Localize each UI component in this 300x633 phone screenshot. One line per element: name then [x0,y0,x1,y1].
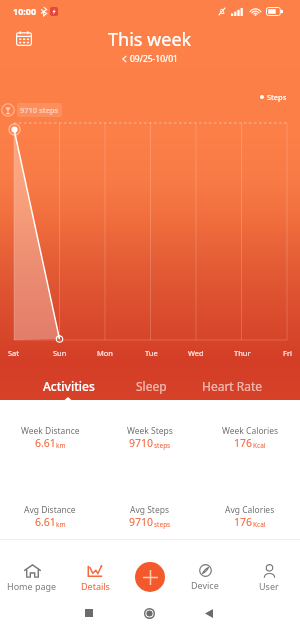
staticText: Thur [234,348,251,358]
button[interactable]: Week Calories [200,425,300,451]
staticText: Fri [283,348,292,358]
staticText: km [56,441,66,450]
button[interactable]: Recents [74,598,104,628]
staticText: This week [108,27,192,52]
button[interactable]: User [239,539,299,595]
button[interactable]: Activities [24,372,114,400]
button[interactable]: Details [65,539,125,595]
staticText: 9710 steps [20,105,59,115]
staticText: Avg Steps [130,504,170,516]
button[interactable]: Calendar [12,26,36,50]
button[interactable]: Back [194,598,224,628]
button[interactable]: 09/25-10/01 [122,53,178,65]
staticText: 6.61 [35,515,56,529]
button[interactable]: Avg Distance [0,504,100,530]
staticText: Sun [53,348,67,358]
staticText: Week Distance [21,425,80,437]
staticText: Device [191,579,219,591]
staticText: Mon [97,348,113,358]
staticText: Steps [267,92,287,102]
button[interactable]: Avg Calories [200,504,300,530]
staticText: 09/25-10/01 [130,53,178,65]
staticText: Home page [7,580,57,592]
staticText: Tue [145,348,158,358]
staticText: Kcal [253,441,266,450]
staticText: Sleep [136,378,167,394]
staticText: 10:00 [13,5,37,17]
button[interactable]: Sleep [106,372,196,400]
button[interactable]: Heart Rate [187,372,277,400]
button[interactable]: Week Steps [100,425,200,451]
staticText: 9710 [129,515,154,529]
button[interactable]: Week Distance [0,425,100,451]
staticText: 6.61 [35,436,56,450]
staticText: Kcal [253,520,266,529]
staticText: steps [154,520,171,529]
staticText: Activities [43,378,95,394]
button[interactable]: Device [175,539,235,595]
staticText: 176 [234,515,253,529]
staticText: Heart Rate [202,378,263,394]
staticText: km [56,520,66,529]
staticText: Avg Calories [225,504,275,516]
staticText: User [259,580,279,592]
staticText: steps [154,441,171,450]
button[interactable]: Add [135,562,165,592]
staticText: Sat [8,348,20,358]
staticText: Week Calories [222,425,279,437]
staticText: Details [81,580,110,592]
staticText: 176 [234,436,253,450]
staticText: Wed [188,348,204,358]
staticText: 9710 [129,436,154,450]
staticText: Week Steps [127,425,173,437]
staticText: Avg Distance [24,504,76,516]
button[interactable]: Avg Steps [100,504,200,530]
button[interactable]: Home page [2,539,62,595]
button[interactable]: Home [134,598,164,628]
